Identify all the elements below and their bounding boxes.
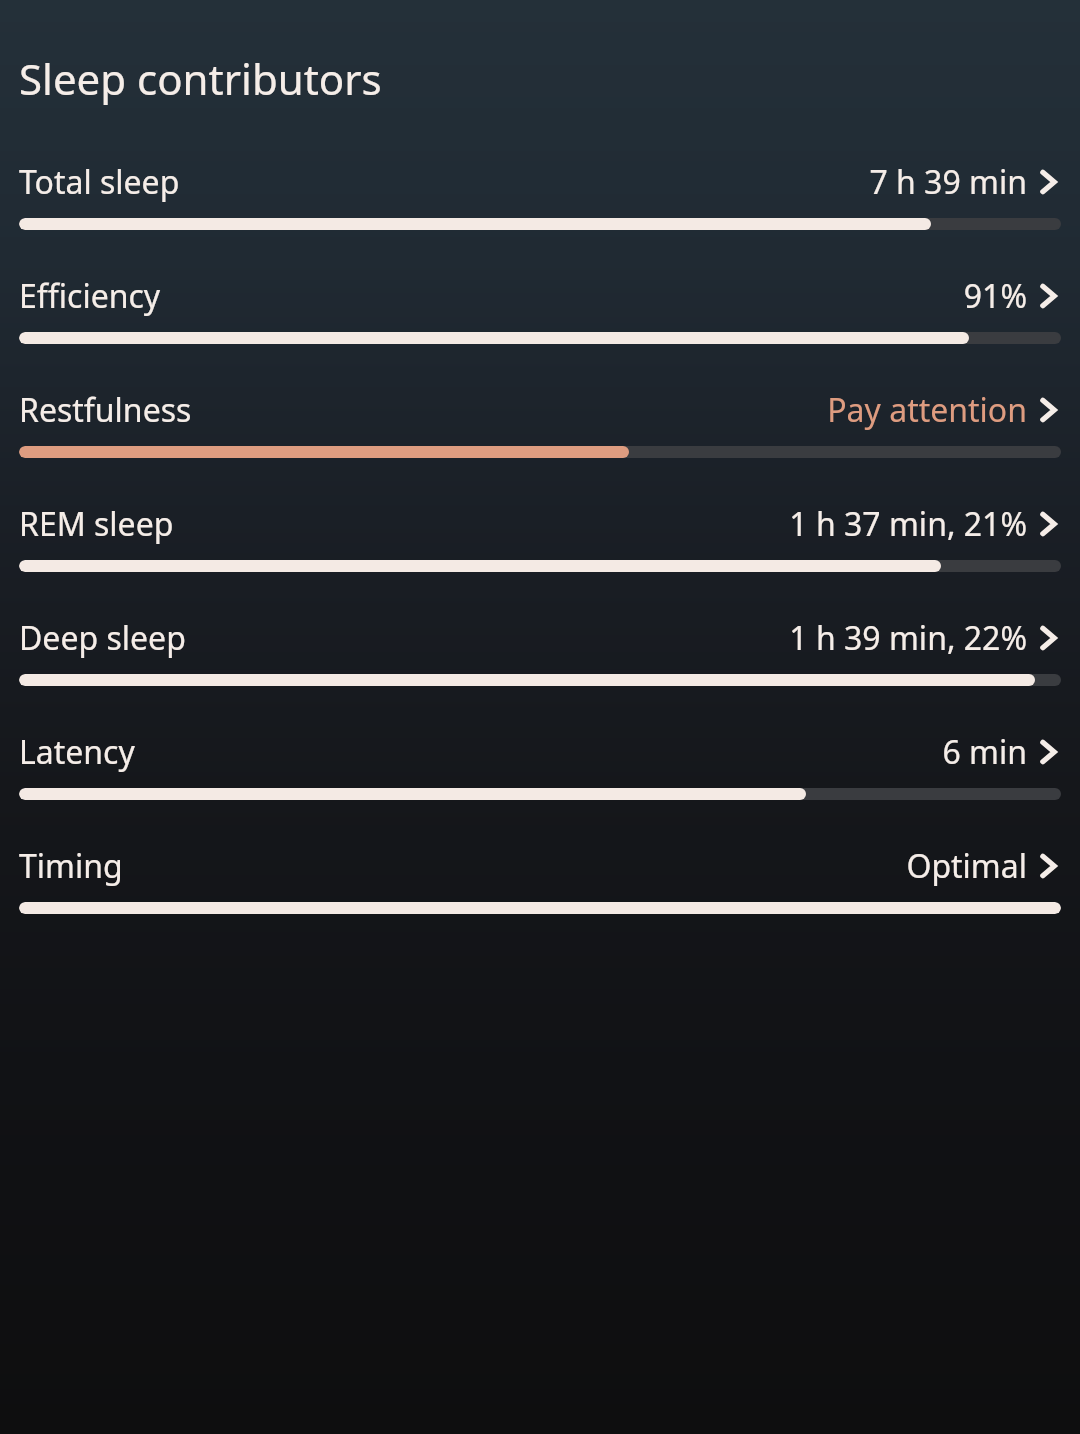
staticText: REM sleep — [19, 502, 174, 546]
staticText: 91% — [963, 274, 1027, 318]
button[interactable]: Efficiency — [19, 274, 1061, 344]
staticText: Deep sleep — [19, 616, 186, 660]
staticText: Sleep contributors — [19, 50, 382, 107]
staticText: Total sleep — [19, 160, 180, 204]
staticText: 1 h 37 min, 21% — [789, 502, 1027, 546]
staticText: Efficiency — [19, 274, 161, 318]
button[interactable]: Timing — [19, 844, 1061, 914]
staticText: Restfulness — [19, 388, 192, 432]
button[interactable]: Restfulness — [19, 388, 1061, 458]
button[interactable]: Latency — [19, 730, 1061, 800]
button[interactable]: Deep sleep — [19, 616, 1061, 686]
button[interactable]: REM sleep — [19, 502, 1061, 572]
staticText: 6 min — [942, 730, 1027, 774]
staticText: Pay attention — [827, 388, 1027, 432]
button[interactable]: Total sleep — [19, 160, 1061, 230]
staticText: Latency — [19, 730, 135, 774]
staticText: Timing — [19, 844, 123, 888]
staticText: 1 h 39 min, 22% — [789, 616, 1027, 660]
staticText: Optimal — [906, 844, 1027, 888]
staticText: 7 h 39 min — [869, 160, 1027, 204]
